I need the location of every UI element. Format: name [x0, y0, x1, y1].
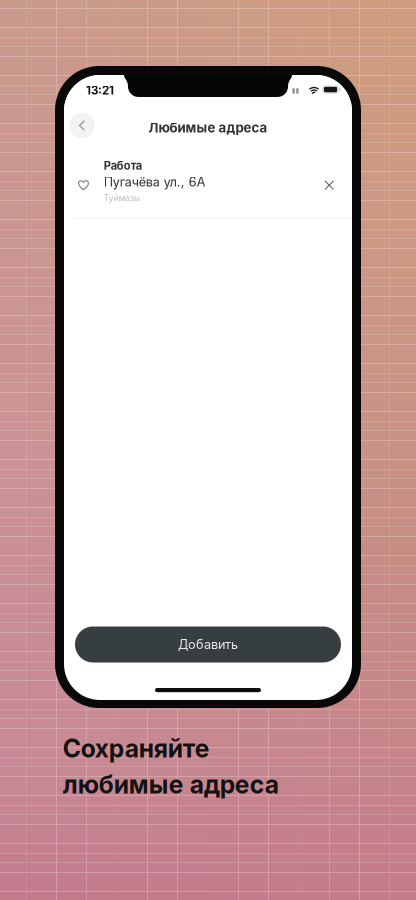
- staticText: Добавить: [178, 637, 238, 652]
- staticText: Туймазы: [104, 193, 140, 203]
- staticText: Пугачёва ул., 6А: [104, 174, 206, 190]
- staticText: любимые адреса: [63, 769, 279, 799]
- button[interactable]: Добавить: [75, 626, 341, 662]
- staticText: Сохраняйте: [63, 733, 210, 763]
- staticText: 13:21: [86, 83, 114, 97]
- staticText: Любимые адреса: [148, 120, 267, 136]
- button[interactable]: Back: [69, 113, 95, 138]
- staticText: Работа: [104, 159, 142, 172]
- button[interactable]: Работа: [64, 151, 352, 221]
